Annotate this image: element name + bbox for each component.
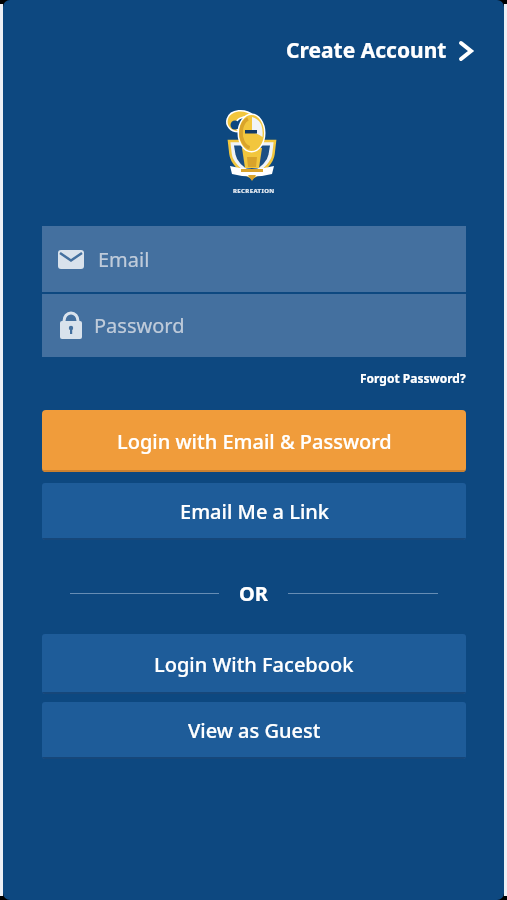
button[interactable]: Login With Facebook	[42, 634, 466, 694]
button[interactable]: Create Account	[286, 36, 474, 65]
staticText: Login With Facebook	[154, 651, 354, 678]
staticText: Email Me a Link	[180, 498, 329, 525]
staticText: OR	[239, 580, 268, 607]
button[interactable]: Forgot Password?	[360, 370, 466, 386]
staticText: Create Account	[286, 36, 447, 65]
staticText: View as Guest	[188, 717, 321, 744]
button[interactable]: Email	[42, 226, 466, 292]
button[interactable]: Login with Email & Password	[42, 410, 466, 472]
button[interactable]: Email Me a Link	[42, 483, 466, 540]
button[interactable]: View as Guest	[42, 702, 466, 759]
staticText: Login with Email & Password	[117, 428, 392, 455]
button[interactable]: Password	[42, 294, 466, 357]
staticText: RECREATION	[233, 187, 275, 195]
staticText: Password	[94, 312, 185, 339]
staticText: Email	[98, 246, 150, 273]
